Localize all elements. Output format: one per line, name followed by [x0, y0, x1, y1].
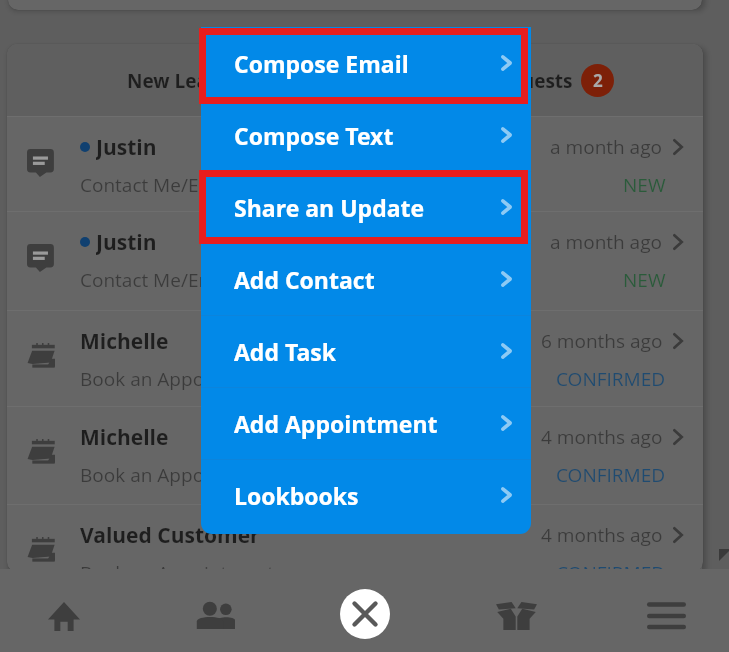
- staticText: 6 months ago: [541, 328, 663, 354]
- staticText: Add Appointment: [234, 408, 438, 439]
- staticText: 2: [593, 69, 603, 92]
- button[interactable]: Add Contact: [201, 243, 531, 315]
- staticText: Book an Appointment: [80, 560, 274, 572]
- staticText: New Leads, Messages & Appointment Reques…: [127, 68, 573, 94]
- button[interactable]: Compose Text: [201, 99, 531, 171]
- staticText: 4 months ago: [541, 522, 663, 548]
- staticText: Michelle: [80, 423, 169, 450]
- staticText: CONFIRMED: [556, 366, 666, 392]
- button[interactable]: More: [619, 574, 713, 652]
- staticText: Justin: [96, 228, 157, 255]
- button[interactable]: Justin: [7, 117, 703, 212]
- staticText: 4 months ago: [541, 424, 663, 450]
- staticText: Book an Appointment: [80, 366, 274, 392]
- staticText: Add Task: [234, 336, 337, 367]
- staticText: Add Contact: [234, 264, 375, 295]
- staticText: Compose Email: [234, 48, 409, 79]
- staticText: NEW: [623, 172, 666, 198]
- staticText: Lookbooks: [234, 480, 359, 511]
- button[interactable]: Compose Email: [201, 27, 531, 99]
- button[interactable]: Add Appointment: [201, 387, 531, 459]
- button[interactable]: Justin: [7, 212, 703, 311]
- button[interactable]: Home: [17, 575, 111, 652]
- staticText: a month ago: [550, 229, 663, 255]
- button[interactable]: Add Task: [201, 315, 531, 387]
- staticText: NEW: [623, 267, 666, 293]
- staticText: a month ago: [550, 134, 663, 160]
- staticText: Share an Update: [234, 192, 425, 223]
- staticText: Contact Me/Email: [80, 172, 237, 198]
- staticText: Compose Text: [234, 120, 394, 151]
- staticText: Contact Me/Email: [80, 267, 237, 293]
- staticText: CONFIRMED: [556, 560, 666, 572]
- button[interactable]: Share an Update: [201, 171, 531, 243]
- staticText: Michelle: [80, 327, 169, 354]
- button[interactable]: Michelle: [7, 407, 703, 505]
- staticText: CONFIRMED: [556, 462, 666, 488]
- staticText: Valued Customer: [80, 521, 260, 548]
- staticText: Justin: [96, 133, 157, 160]
- button[interactable]: Close menu: [340, 589, 390, 639]
- button[interactable]: Contacts: [168, 574, 262, 652]
- button[interactable]: Products: [469, 574, 563, 652]
- button[interactable]: Michelle: [7, 311, 703, 407]
- staticText: Book an Appointment: [80, 462, 274, 488]
- button[interactable]: Lookbooks: [201, 459, 531, 531]
- button[interactable]: Valued Customer: [7, 505, 703, 572]
